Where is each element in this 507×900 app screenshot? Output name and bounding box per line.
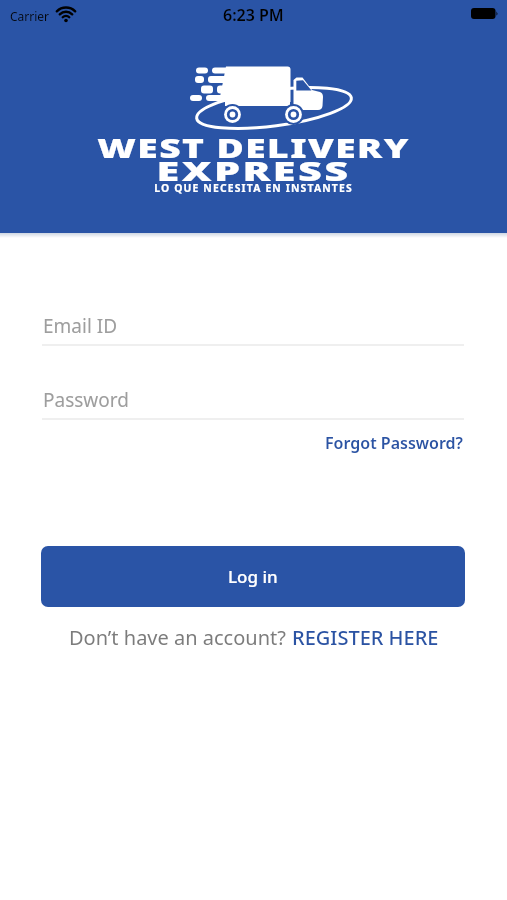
staticText: Carrier — [10, 8, 50, 24]
staticText: Don’t have an account? — [69, 624, 292, 651]
button[interactable]: REGISTER HERE — [292, 624, 439, 651]
staticText: EXPRESS — [0, 153, 507, 188]
staticText: LO QUE NECESITA EN INSTANTES — [0, 181, 507, 195]
staticText: REGISTER HERE — [292, 624, 439, 651]
staticText: Password — [43, 387, 129, 413]
button[interactable]: Forgot Password? — [325, 432, 463, 454]
staticText: Log in — [228, 565, 278, 588]
staticText: Email ID — [43, 313, 118, 339]
staticText: 6:23 PM — [223, 4, 284, 26]
staticText: WEST DELIVERY — [0, 130, 507, 165]
staticText: Forgot Password? — [325, 432, 463, 454]
button[interactable]: Log in — [41, 546, 465, 607]
